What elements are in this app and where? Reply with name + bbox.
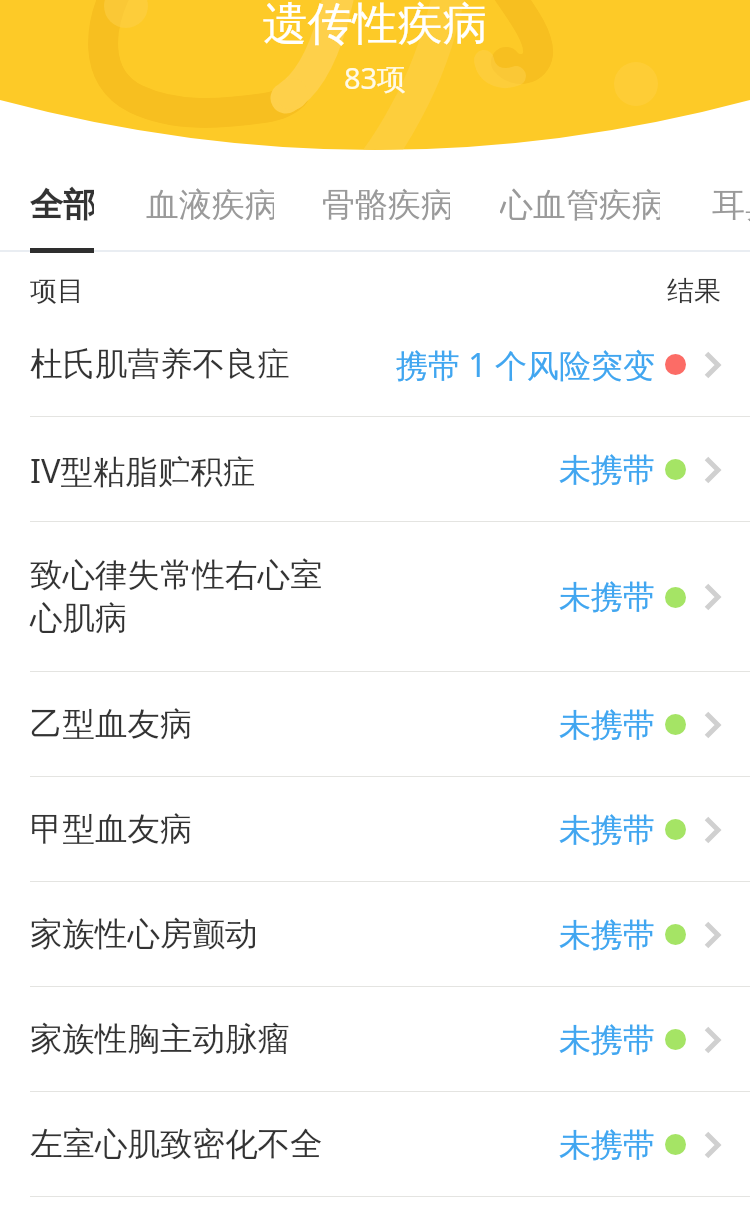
staticText: 遗传性疾病 [0, 0, 750, 58]
button[interactable]: 左室心肌致密化不全 [0, 1092, 750, 1197]
staticText: 项目 [30, 274, 230, 308]
other: Open IV型粘脂贮积症 [703, 456, 723, 484]
staticText: 未携带 [559, 577, 655, 617]
button[interactable]: 全部 [30, 158, 94, 254]
staticText: 家族性心房颤动 [30, 914, 258, 955]
button[interactable]: 致心律失常性右心室 心肌病 [0, 522, 750, 672]
other: Open 家族性心房颤动 [703, 921, 723, 949]
button[interactable]: 血液疾病 [146, 158, 274, 254]
staticText: 未携带 [559, 915, 655, 955]
staticText: 未携带 [559, 1020, 655, 1060]
staticText: 携带 1 个风险突变 [396, 343, 655, 387]
staticText: 致心律失常性右心室 心肌病 [30, 555, 323, 639]
other: Open 乙型血友病 [703, 711, 723, 739]
button[interactable]: 心血管疾病 [500, 158, 660, 254]
button[interactable]: 甲型血友病 [0, 777, 750, 882]
button[interactable]: 骨骼疾病 [322, 158, 450, 254]
staticText: 未携带 [559, 450, 655, 490]
staticText: 心血管疾病 [500, 184, 660, 226]
button[interactable]: 杜氏肌营养不良症 [0, 312, 750, 417]
button[interactable]: 耳鼻喉疾病 [712, 158, 750, 254]
staticText: 杜氏肌营养不良症 [30, 344, 290, 385]
other: Open 杜氏肌营养不良症 [703, 351, 723, 379]
other: Open 甲型血友病 [703, 816, 723, 844]
staticText: 血液疾病 [146, 184, 274, 226]
staticText: 未携带 [559, 1125, 655, 1165]
button[interactable]: 家族性心房颤动 [0, 882, 750, 987]
other: Open 致心律失常性右心室 [703, 583, 723, 611]
button[interactable]: IV型粘脂贮积症 [0, 417, 750, 522]
staticText: 未携带 [559, 810, 655, 850]
staticText: 全部 [30, 184, 94, 226]
staticText: 83项 [0, 58, 750, 98]
staticText: 家族性胸主动脉瘤 [30, 1019, 290, 1060]
button[interactable]: 家族性胸主动脉瘤 [0, 987, 750, 1092]
button[interactable]: 乙型血友病 [0, 672, 750, 777]
staticText: 左室心肌致密化不全 [30, 1124, 323, 1165]
staticText: 未携带 [559, 705, 655, 745]
other: Open 左室心肌致密化不全 [703, 1131, 723, 1159]
staticText: 乙型血友病 [30, 704, 193, 745]
staticText: 骨骼疾病 [322, 184, 450, 226]
staticText: 结果 [470, 274, 721, 308]
staticText: IV型粘脂贮积症 [30, 448, 256, 492]
other: Open 家族性胸主动脉瘤 [703, 1026, 723, 1054]
staticText: 甲型血友病 [30, 809, 193, 850]
staticText: 耳鼻喉疾病 [712, 184, 750, 226]
